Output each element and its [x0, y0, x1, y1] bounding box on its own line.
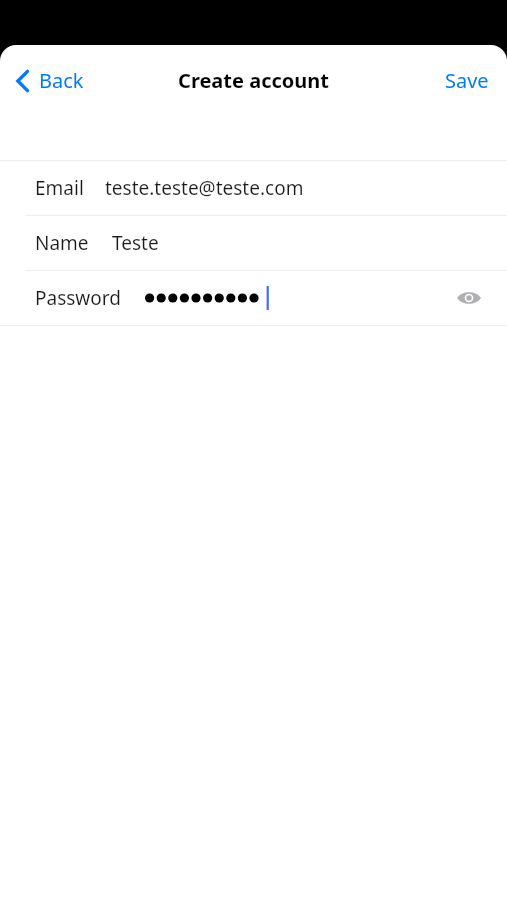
button[interactable]: Show password [449, 278, 489, 318]
staticText: Save [445, 67, 489, 94]
staticText: Password [35, 285, 121, 311]
staticText: Back [39, 67, 84, 94]
staticText: Teste [112, 230, 159, 256]
button[interactable]: Password [0, 271, 507, 325]
button[interactable]: Name [0, 216, 507, 270]
staticText: Create account [178, 67, 329, 94]
staticText: Name [35, 230, 89, 256]
staticText: teste.teste@teste.com [105, 175, 304, 201]
button[interactable]: Email [0, 161, 507, 215]
button[interactable]: Back [10, 61, 92, 100]
button[interactable]: Save [437, 61, 497, 100]
staticText: Email [35, 175, 84, 201]
